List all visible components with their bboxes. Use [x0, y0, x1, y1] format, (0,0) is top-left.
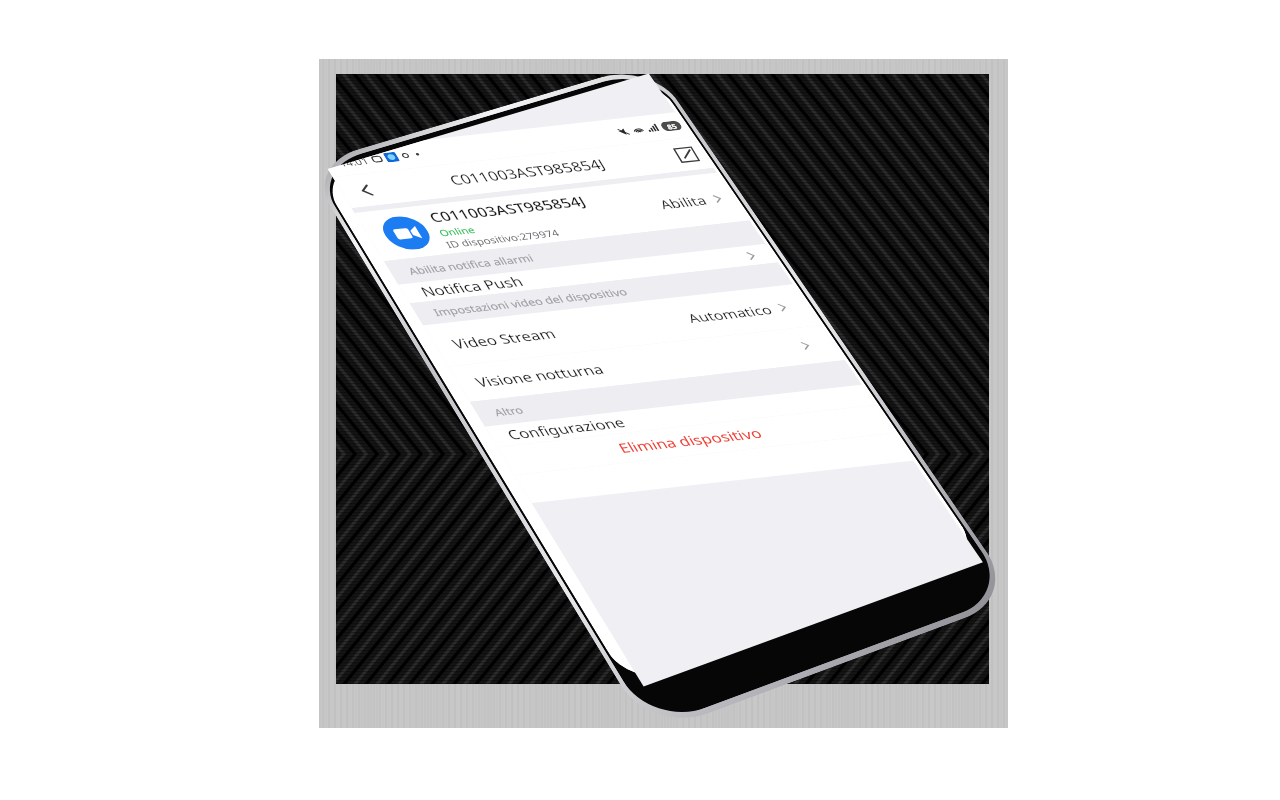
- button[interactable]: Back: [329, 160, 404, 220]
- staticText: Altro: [488, 394, 530, 427]
- button[interactable]: Back: [890, 543, 942, 583]
- button[interactable]: Visione notturna: [423, 191, 884, 534]
- button[interactable]: C011003AST985854J: [326, 37, 802, 393]
- staticText: Impostazioni video del dispositivo: [427, 225, 633, 378]
- staticText: Online: [433, 212, 481, 250]
- staticText: C011003AST985854J: [441, 107, 614, 237]
- staticText: Configurazione: [499, 378, 634, 479]
- button[interactable]: Configurazione: [463, 251, 908, 579]
- button[interactable]: Home: [774, 585, 826, 626]
- staticText: Abilita notifica allarmi: [402, 213, 539, 315]
- staticText: Abilita: [652, 178, 714, 226]
- staticText: Video Stream: [444, 293, 564, 384]
- button[interactable]: Recents: [654, 628, 707, 670]
- button[interactable]: Video Stream: [396, 150, 864, 499]
- staticText: Notifica Push: [412, 241, 532, 332]
- button[interactable]: Elimina dispositivo: [473, 272, 927, 607]
- staticText: C011003AST985854J: [421, 145, 594, 274]
- staticText: Visione notturna: [467, 321, 612, 430]
- button[interactable]: Edit: [647, 123, 724, 185]
- staticText: ID dispositivo:279974: [440, 192, 565, 285]
- staticText: 14:01: [333, 145, 375, 178]
- staticText: 85: [662, 118, 682, 134]
- button[interactable]: Notifica Push: [377, 109, 820, 435]
- staticText: Elimina dispositivo: [610, 381, 770, 500]
- staticText: Automatico: [680, 276, 780, 351]
